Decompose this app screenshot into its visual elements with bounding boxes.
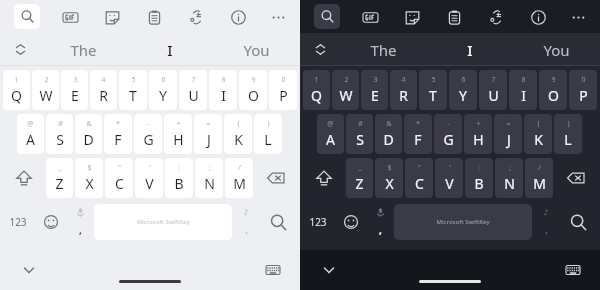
button[interactable]: # <box>46 114 73 154</box>
button[interactable]: @ <box>17 114 44 154</box>
button[interactable]: 7 <box>179 70 207 110</box>
button[interactable]: Switch keyboard <box>262 259 284 281</box>
button[interactable]: 4 <box>390 70 417 110</box>
button[interactable]: + <box>164 114 192 154</box>
button[interactable]: 9 <box>539 70 567 110</box>
button[interactable]: 123 <box>302 200 334 244</box>
button[interactable]: 123 <box>2 200 34 244</box>
button[interactable]: ' <box>435 158 463 198</box>
button[interactable]: Search <box>314 4 340 29</box>
button[interactable]: 2 <box>332 70 359 110</box>
button[interactable]: $ <box>75 158 103 198</box>
button[interactable]: _ <box>46 158 73 198</box>
button[interactable]: 3 <box>361 70 388 110</box>
button[interactable]: & <box>375 114 402 154</box>
button[interactable]: Microsoft SwiftKey <box>94 204 232 240</box>
button[interactable]: Expand <box>300 33 340 66</box>
button[interactable]: ) <box>554 114 582 154</box>
button[interactable]: Translate <box>184 5 208 29</box>
button[interactable]: You <box>213 33 300 66</box>
button[interactable]: Backspace <box>554 156 598 200</box>
button[interactable]: Stickers <box>100 5 124 29</box>
button[interactable]: @ <box>317 114 344 154</box>
button[interactable]: 6 <box>449 70 477 110</box>
button[interactable]: $ <box>375 158 403 198</box>
button[interactable]: Hide keyboard <box>18 259 40 281</box>
button[interactable]: ( <box>524 114 552 154</box>
button[interactable]: 5 <box>419 70 447 110</box>
button[interactable]: ; <box>195 158 223 198</box>
staticText: - <box>447 119 450 129</box>
button[interactable]: Voice input <box>367 200 394 244</box>
button[interactable]: Search <box>559 200 598 244</box>
button[interactable]: 3 <box>61 70 88 110</box>
button[interactable]: I <box>126 33 213 66</box>
button[interactable]: 8 <box>209 70 237 110</box>
button[interactable]: - <box>434 114 462 154</box>
button[interactable]: Emoji <box>34 200 67 244</box>
button[interactable]: 6 <box>149 70 177 110</box>
button[interactable]: * <box>104 114 132 154</box>
staticText: . <box>245 223 248 237</box>
button[interactable]: " <box>405 158 433 198</box>
button[interactable]: GIF <box>58 5 82 29</box>
button[interactable]: / <box>525 158 553 198</box>
button[interactable]: 2 <box>32 70 59 110</box>
staticText: " <box>118 163 121 173</box>
button[interactable]: + <box>464 114 492 154</box>
button[interactable]: = <box>194 114 222 154</box>
button[interactable]: Search <box>259 200 298 244</box>
button[interactable]: Symbols <box>532 200 559 244</box>
button[interactable]: 8 <box>509 70 537 110</box>
button[interactable]: = <box>494 114 522 154</box>
button[interactable]: Shift <box>2 156 45 200</box>
button[interactable]: 9 <box>239 70 267 110</box>
button[interactable]: 1 <box>303 70 330 110</box>
staticText: R <box>99 86 108 105</box>
button[interactable]: Info <box>226 5 250 29</box>
button[interactable]: Translate <box>484 5 508 29</box>
button[interactable]: 7 <box>479 70 507 110</box>
button[interactable]: 5 <box>119 70 147 110</box>
button[interactable]: Shift <box>302 156 345 200</box>
button[interactable]: Info <box>526 5 550 29</box>
button[interactable]: The <box>40 33 126 66</box>
button[interactable]: 4 <box>90 70 117 110</box>
button[interactable]: Search <box>14 4 40 29</box>
button[interactable]: / <box>225 158 253 198</box>
button[interactable]: 0 <box>269 70 297 110</box>
button[interactable]: # <box>346 114 373 154</box>
button[interactable]: ) <box>254 114 282 154</box>
button[interactable]: You <box>513 33 600 66</box>
button[interactable]: GIF <box>358 5 382 29</box>
button[interactable]: : <box>465 158 493 198</box>
button[interactable]: Voice input <box>67 200 94 244</box>
button[interactable]: _ <box>346 158 373 198</box>
button[interactable]: More options <box>566 5 590 29</box>
button[interactable]: Clipboard <box>442 5 466 29</box>
button[interactable]: 1 <box>3 70 30 110</box>
button[interactable]: ( <box>224 114 252 154</box>
button[interactable]: Backspace <box>254 156 298 200</box>
staticText: K <box>234 130 243 149</box>
button[interactable]: ; <box>495 158 523 198</box>
button[interactable]: * <box>404 114 432 154</box>
button[interactable]: Clipboard <box>142 5 166 29</box>
button[interactable]: ' <box>135 158 163 198</box>
button[interactable]: & <box>75 114 102 154</box>
button[interactable]: I <box>426 33 513 66</box>
button[interactable]: The <box>340 33 426 66</box>
button[interactable]: Switch keyboard <box>562 259 584 281</box>
button[interactable]: More options <box>266 5 290 29</box>
button[interactable]: Emoji <box>334 200 367 244</box>
button[interactable]: Expand <box>0 33 40 66</box>
button[interactable]: Microsoft SwiftKey <box>394 204 532 240</box>
button[interactable]: Stickers <box>400 5 424 29</box>
staticText: T <box>429 86 437 105</box>
button[interactable]: 0 <box>569 70 597 110</box>
button[interactable]: - <box>134 114 162 154</box>
button[interactable]: : <box>165 158 193 198</box>
button[interactable]: Symbols <box>232 200 259 244</box>
button[interactable]: " <box>105 158 133 198</box>
button[interactable]: Hide keyboard <box>318 259 340 281</box>
